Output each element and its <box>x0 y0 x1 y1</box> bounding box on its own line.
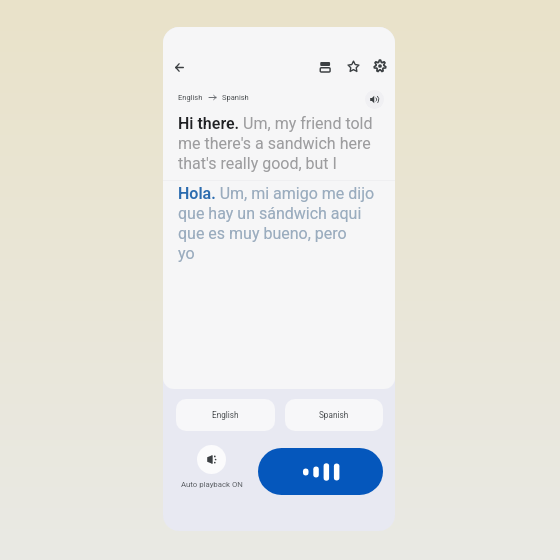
button[interactable]: Record <box>258 448 383 495</box>
staticText: Spanish <box>222 93 249 102</box>
staticText: English <box>212 410 239 420</box>
staticText: Hola. Um, mi amigo me dijo que hay un sá… <box>178 184 375 263</box>
staticText: English <box>178 93 203 102</box>
button[interactable]: Spanish <box>285 399 383 431</box>
button[interactable] <box>181 445 241 474</box>
staticText: Spanish <box>319 410 349 420</box>
button[interactable]: Transcribe <box>313 54 339 80</box>
button[interactable]: English <box>176 399 275 431</box>
button[interactable]: Back <box>166 54 192 80</box>
button[interactable]: Settings <box>367 53 393 79</box>
staticText: Auto playback ON <box>181 480 243 489</box>
staticText: Hi there. Um, my friend told me there's … <box>178 114 373 173</box>
button[interactable]: Listen <box>365 90 384 109</box>
button[interactable]: Bookmark <box>340 53 366 79</box>
